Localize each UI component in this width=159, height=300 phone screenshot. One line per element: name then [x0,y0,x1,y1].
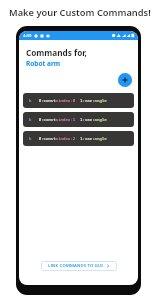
button[interactable]: k 0:const:index:1 1:var:angle [23,112,134,127]
button[interactable]: k 0:const:index:0 1:var:angle [23,93,134,108]
staticText: k 0:const:index:2 1:var:angle [29,136,107,142]
button[interactable]: k 0:const:index:2 1:var:angle [23,131,134,146]
staticText: k 0:const:index:0 1:var:angle [29,98,107,104]
staticText: Make your Custom Commands! [9,6,151,19]
staticText: Robot arm [26,59,61,68]
staticText: k 0:const:index:1 1:var:angle [29,117,107,123]
staticText: LINK COMMANDS TO GUI [48,263,103,269]
button[interactable]: LINK COMMANDS TO GUI [41,261,117,271]
staticText: 4:30 [23,33,32,39]
button[interactable]: Add command [118,73,132,87]
staticText: Commands for, [26,47,87,58]
